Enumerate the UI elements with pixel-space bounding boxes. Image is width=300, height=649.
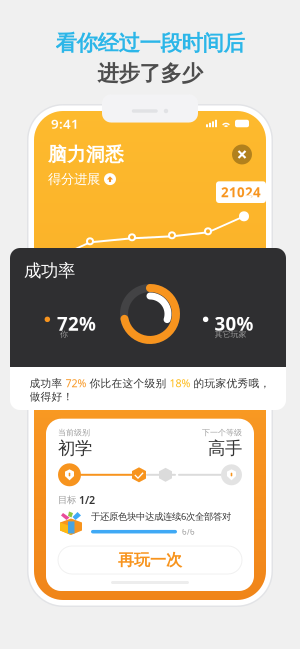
staticText: 6/6 — [182, 526, 195, 537]
staticText: 成功率 — [24, 260, 75, 281]
staticText: 1/2 — [79, 493, 95, 507]
staticText: 成功率 72% 你比在这个级别 18% 的玩家优秀哦，做得好！ — [29, 376, 270, 403]
staticText: 目标 — [58, 494, 76, 506]
button[interactable]: 关闭 — [232, 144, 252, 164]
staticText: 下一个等级 — [202, 428, 242, 437]
staticText: 看你经过一段时间后 — [55, 30, 244, 56]
staticText: 其它玩家 — [214, 329, 246, 339]
staticText: 进步了多少 — [97, 60, 202, 86]
staticText: 再玩一次 — [118, 550, 182, 570]
staticText: 初学 — [58, 437, 92, 459]
staticText: 当前级别 — [58, 428, 90, 437]
staticText: 于还原色块中达成连续6次全部答对 — [91, 510, 231, 522]
staticText: 9:41 — [51, 115, 79, 132]
staticText: 高手 — [208, 437, 242, 459]
staticText: 30% — [214, 311, 253, 336]
staticText: 72% — [57, 311, 96, 336]
staticText: 得分进展 — [48, 171, 100, 187]
staticText: 21024 — [221, 183, 261, 201]
button[interactable]: 再玩一次 — [58, 546, 242, 574]
staticText: 你 — [60, 329, 68, 339]
staticText: 脑力洞悉 — [48, 143, 124, 166]
